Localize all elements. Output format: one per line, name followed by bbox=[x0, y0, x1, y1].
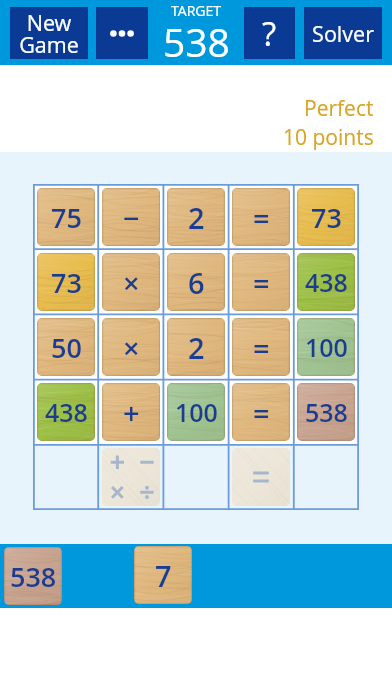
button[interactable]: + bbox=[102, 383, 160, 441]
staticText: + bbox=[123, 393, 140, 432]
button[interactable]: 538 bbox=[4, 547, 62, 605]
button[interactable]: 100 bbox=[297, 318, 355, 376]
staticText: 100 bbox=[175, 395, 218, 429]
staticText: ? bbox=[262, 11, 277, 56]
button[interactable]: − bbox=[102, 188, 160, 246]
staticText: × bbox=[123, 328, 140, 367]
staticText: 2 bbox=[188, 328, 205, 367]
staticText: 75 bbox=[51, 199, 82, 236]
button[interactable]: = bbox=[232, 188, 290, 246]
button[interactable]: × bbox=[102, 318, 160, 376]
staticText: 6 bbox=[188, 263, 205, 302]
staticText: 438 bbox=[45, 395, 88, 429]
staticText: 100 bbox=[305, 330, 348, 364]
button[interactable]: More options bbox=[96, 7, 148, 59]
button[interactable]: 538 bbox=[297, 383, 355, 441]
button[interactable]: 2 bbox=[167, 188, 225, 246]
staticText: × bbox=[123, 263, 140, 302]
button[interactable]: 73 bbox=[37, 253, 95, 311]
button[interactable] bbox=[102, 448, 160, 506]
staticText: = bbox=[253, 198, 270, 237]
staticText: 538 bbox=[305, 395, 348, 429]
staticText: Solver bbox=[312, 19, 374, 48]
staticText: 2 bbox=[188, 198, 205, 237]
staticText: = bbox=[253, 263, 270, 302]
staticText: 10 points bbox=[283, 123, 374, 152]
button[interactable]: 7 bbox=[134, 546, 192, 604]
button[interactable]: 438 bbox=[297, 253, 355, 311]
staticText: 73 bbox=[51, 264, 82, 301]
button[interactable]: 73 bbox=[297, 188, 355, 246]
button[interactable]: = bbox=[232, 318, 290, 376]
staticText: 538 bbox=[163, 15, 230, 68]
staticText: − bbox=[123, 198, 140, 237]
button[interactable]: = bbox=[232, 383, 290, 441]
staticText: = bbox=[253, 328, 270, 367]
button[interactable]: = bbox=[232, 253, 290, 311]
staticText: 438 bbox=[305, 265, 348, 299]
button[interactable]: Solver bbox=[304, 7, 382, 59]
button[interactable]: 50 bbox=[37, 318, 95, 376]
button[interactable]: 75 bbox=[37, 188, 95, 246]
staticText: = bbox=[253, 393, 270, 432]
button[interactable]: Help bbox=[244, 7, 295, 59]
staticText: 50 bbox=[51, 329, 82, 366]
staticText: New Game bbox=[19, 8, 79, 59]
staticText: 7 bbox=[155, 556, 172, 595]
button[interactable] bbox=[232, 448, 290, 506]
button[interactable]: 2 bbox=[167, 318, 225, 376]
button[interactable]: New Game bbox=[10, 7, 88, 59]
button[interactable]: 438 bbox=[37, 383, 95, 441]
button[interactable]: 6 bbox=[167, 253, 225, 311]
button[interactable]: 100 bbox=[167, 383, 225, 441]
staticText: Perfect bbox=[304, 94, 374, 123]
button[interactable]: × bbox=[102, 253, 160, 311]
staticText: 73 bbox=[311, 199, 342, 236]
staticText: 538 bbox=[10, 558, 57, 595]
staticText: TARGET bbox=[171, 1, 222, 20]
